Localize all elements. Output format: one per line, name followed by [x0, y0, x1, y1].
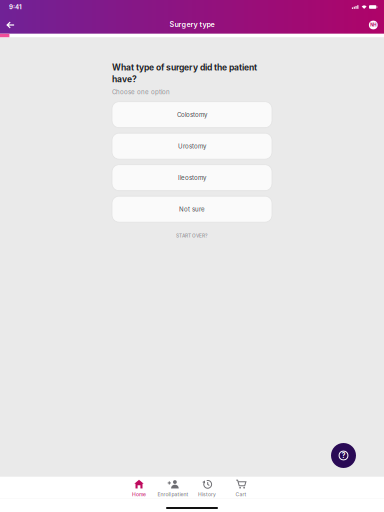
button[interactable]: Cart	[224, 476, 258, 498]
staticText: What type of surgery did the patient hav…	[112, 62, 257, 84]
staticText: Not sure	[179, 205, 205, 213]
button[interactable]: Back	[0, 12, 21, 34]
staticText: Ileostomy	[178, 174, 206, 181]
button[interactable]: Enroll patient	[156, 476, 190, 498]
staticText: Enroll patient	[157, 491, 188, 497]
button[interactable]: Ileostomy	[112, 165, 272, 191]
button[interactable]: Colostomy	[112, 102, 272, 128]
button[interactable]: Not sure	[112, 196, 272, 222]
staticText: NH	[370, 22, 376, 28]
button[interactable]: History	[190, 476, 224, 498]
staticText: Choose one option	[112, 88, 170, 96]
staticText: START OVER?	[176, 233, 208, 239]
staticText: ?	[341, 451, 345, 460]
staticText: Colostomy	[177, 111, 207, 118]
staticText: 9:41	[9, 3, 22, 11]
staticText: Home	[132, 491, 146, 497]
staticText: Surgery type	[169, 20, 214, 29]
button[interactable]: Account	[364, 12, 384, 34]
staticText: History	[198, 491, 216, 497]
button[interactable]: START OVER?	[112, 228, 272, 243]
button[interactable]: Urostomy	[112, 133, 272, 159]
button[interactable]: Home	[122, 476, 156, 498]
button[interactable]: Help	[331, 443, 356, 468]
staticText: Urostomy	[178, 142, 206, 150]
staticText: Cart	[235, 491, 246, 497]
